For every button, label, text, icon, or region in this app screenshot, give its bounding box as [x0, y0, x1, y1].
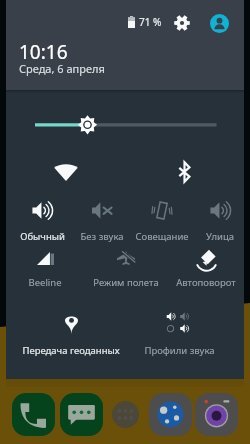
staticText: Совещание: [135, 230, 189, 243]
staticText: Режим полета: [93, 276, 159, 289]
staticText: 71 %: [139, 15, 162, 29]
staticText: Обычный: [20, 230, 65, 243]
button[interactable]: All apps: [112, 401, 139, 428]
button[interactable]: [176, 241, 236, 289]
button[interactable]: [15, 242, 75, 290]
button[interactable]: Bluetooth: [125, 150, 244, 192]
staticText: Beeline: [28, 276, 62, 289]
button[interactable]: [96, 241, 156, 289]
button[interactable]: Camera: [195, 393, 238, 436]
staticText: 10:16: [19, 39, 68, 59]
staticText: Передача геоданных: [22, 344, 120, 357]
button[interactable]: [190, 192, 250, 240]
staticText: Без звука: [80, 230, 124, 243]
button[interactable]: Brightness: [6, 103, 244, 145]
staticText: Автоповорот: [176, 276, 236, 289]
button[interactable]: Settings: [174, 15, 190, 31]
button[interactable]: [149, 302, 209, 350]
button[interactable]: Messages: [60, 393, 103, 436]
button[interactable]: Phone: [12, 393, 55, 436]
button[interactable]: Wi-Fi: [6, 150, 125, 192]
staticText: Улица: [206, 230, 234, 243]
button[interactable]: User account: [210, 14, 229, 33]
staticText: Профили звука: [144, 344, 215, 357]
button[interactable]: [41, 304, 101, 352]
button[interactable]: [12, 192, 72, 240]
staticText: Среда, 6 апреля: [19, 61, 105, 76]
button[interactable]: [72, 192, 132, 240]
button[interactable]: [132, 191, 192, 239]
button[interactable]: Browser: [149, 393, 192, 436]
